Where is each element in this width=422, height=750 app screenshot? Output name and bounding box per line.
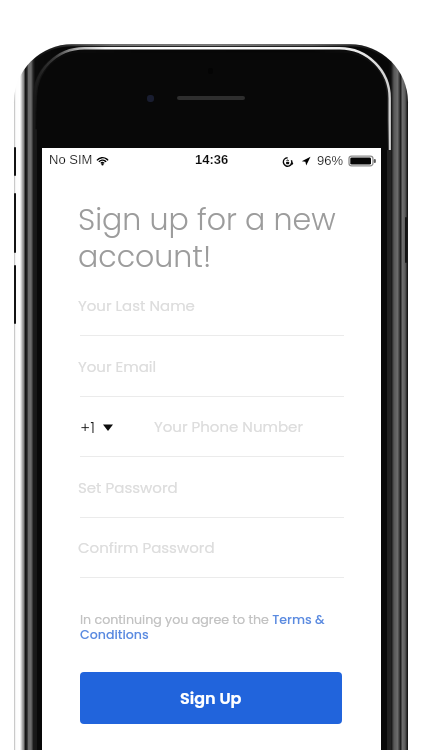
staticText: +1 bbox=[80, 417, 96, 438]
button[interactable]: Your Last Name bbox=[78, 276, 342, 335]
button[interactable]: Select country code bbox=[80, 407, 122, 447]
staticText: Your Email bbox=[78, 356, 157, 377]
staticText: Set Password bbox=[78, 477, 178, 498]
button[interactable]: Your Phone Number bbox=[154, 397, 344, 456]
staticText: Your Last Name bbox=[78, 295, 195, 316]
staticText: Sign Up bbox=[180, 687, 242, 709]
button[interactable]: Set Password bbox=[78, 458, 342, 517]
button[interactable]: Confirm Password bbox=[78, 518, 342, 577]
staticText: No SIM bbox=[49, 152, 93, 167]
staticText: In continuing you agree to the Terms & C… bbox=[80, 611, 344, 643]
staticText: 96% bbox=[317, 153, 344, 168]
staticText: Sign up for a new account! bbox=[78, 199, 354, 277]
button[interactable]: Sign Up bbox=[80, 672, 342, 724]
staticText: Your Phone Number bbox=[154, 416, 303, 437]
staticText: 14:36 bbox=[195, 152, 229, 167]
staticText: Confirm Password bbox=[78, 537, 215, 558]
button[interactable]: Your Email bbox=[78, 337, 342, 396]
button[interactable]: In continuing you agree to the Terms & C… bbox=[80, 611, 344, 643]
